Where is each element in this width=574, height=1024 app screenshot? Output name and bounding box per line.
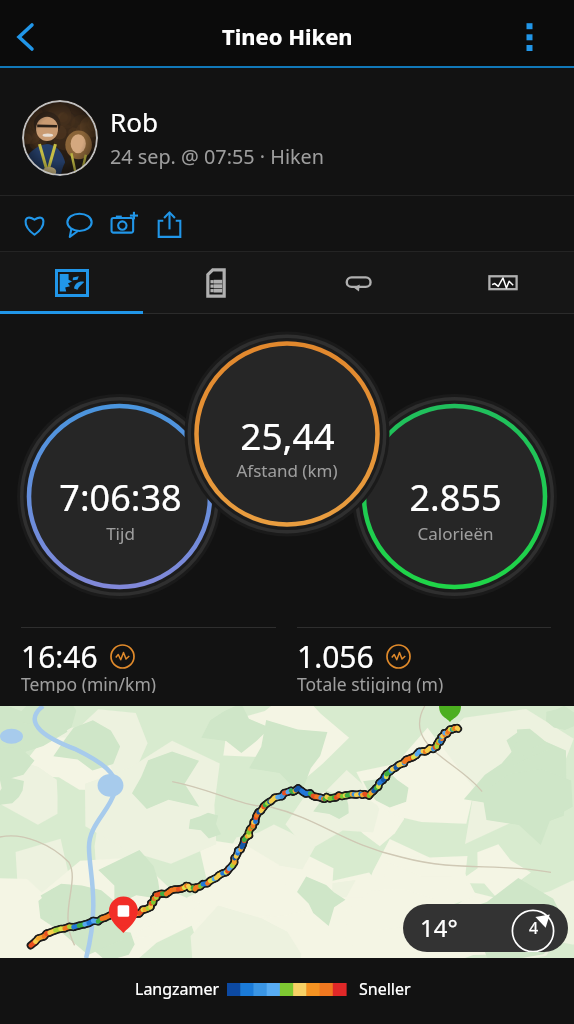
staticText: 14° <box>420 911 458 944</box>
staticText: Langzamer <box>135 978 220 1000</box>
staticText: Totale stijging (m) <box>297 672 444 693</box>
button[interactable]: Graphs <box>431 252 574 314</box>
button[interactable]: 7:06:38 <box>20 437 220 557</box>
staticText: 7:06:38 <box>59 473 182 522</box>
staticText: 25,44 <box>240 410 335 460</box>
button[interactable]: 16:46 <box>21 636 276 698</box>
staticText: 24 sep. @ 07:55 · Hiken <box>110 143 324 170</box>
button[interactable]: 2.855 <box>355 437 555 557</box>
button[interactable]: Laps <box>287 252 430 314</box>
button[interactable]: Add photo <box>107 207 141 241</box>
staticText: Tineo Hiken <box>222 21 353 51</box>
button[interactable]: 14° <box>403 904 568 952</box>
staticText: Tijd <box>106 522 135 545</box>
button[interactable]: Share <box>152 207 186 241</box>
button[interactable]: Rob <box>0 68 574 196</box>
button[interactable]: 14° <box>0 706 574 958</box>
staticText: Afstand (km) <box>236 459 338 482</box>
staticText: 1.056 <box>297 636 374 677</box>
staticText: Calorieën <box>417 522 494 545</box>
staticText: 2.855 <box>409 473 502 522</box>
button[interactable]: Comment <box>62 207 96 241</box>
staticText: Rob <box>110 104 158 139</box>
button[interactable]: Back <box>0 12 51 63</box>
button[interactable]: Details <box>144 252 287 314</box>
button[interactable]: 1.056 <box>297 636 552 698</box>
staticText: Sneller <box>359 978 411 1000</box>
button[interactable]: More options <box>507 12 552 57</box>
staticText: 4 <box>529 917 539 939</box>
button[interactable]: 25,44 <box>187 374 387 494</box>
button[interactable]: Like <box>17 207 51 241</box>
staticText: 16:46 <box>21 636 98 677</box>
staticText: Tempo (min/km) <box>21 672 157 693</box>
button[interactable]: Map <box>0 252 143 314</box>
